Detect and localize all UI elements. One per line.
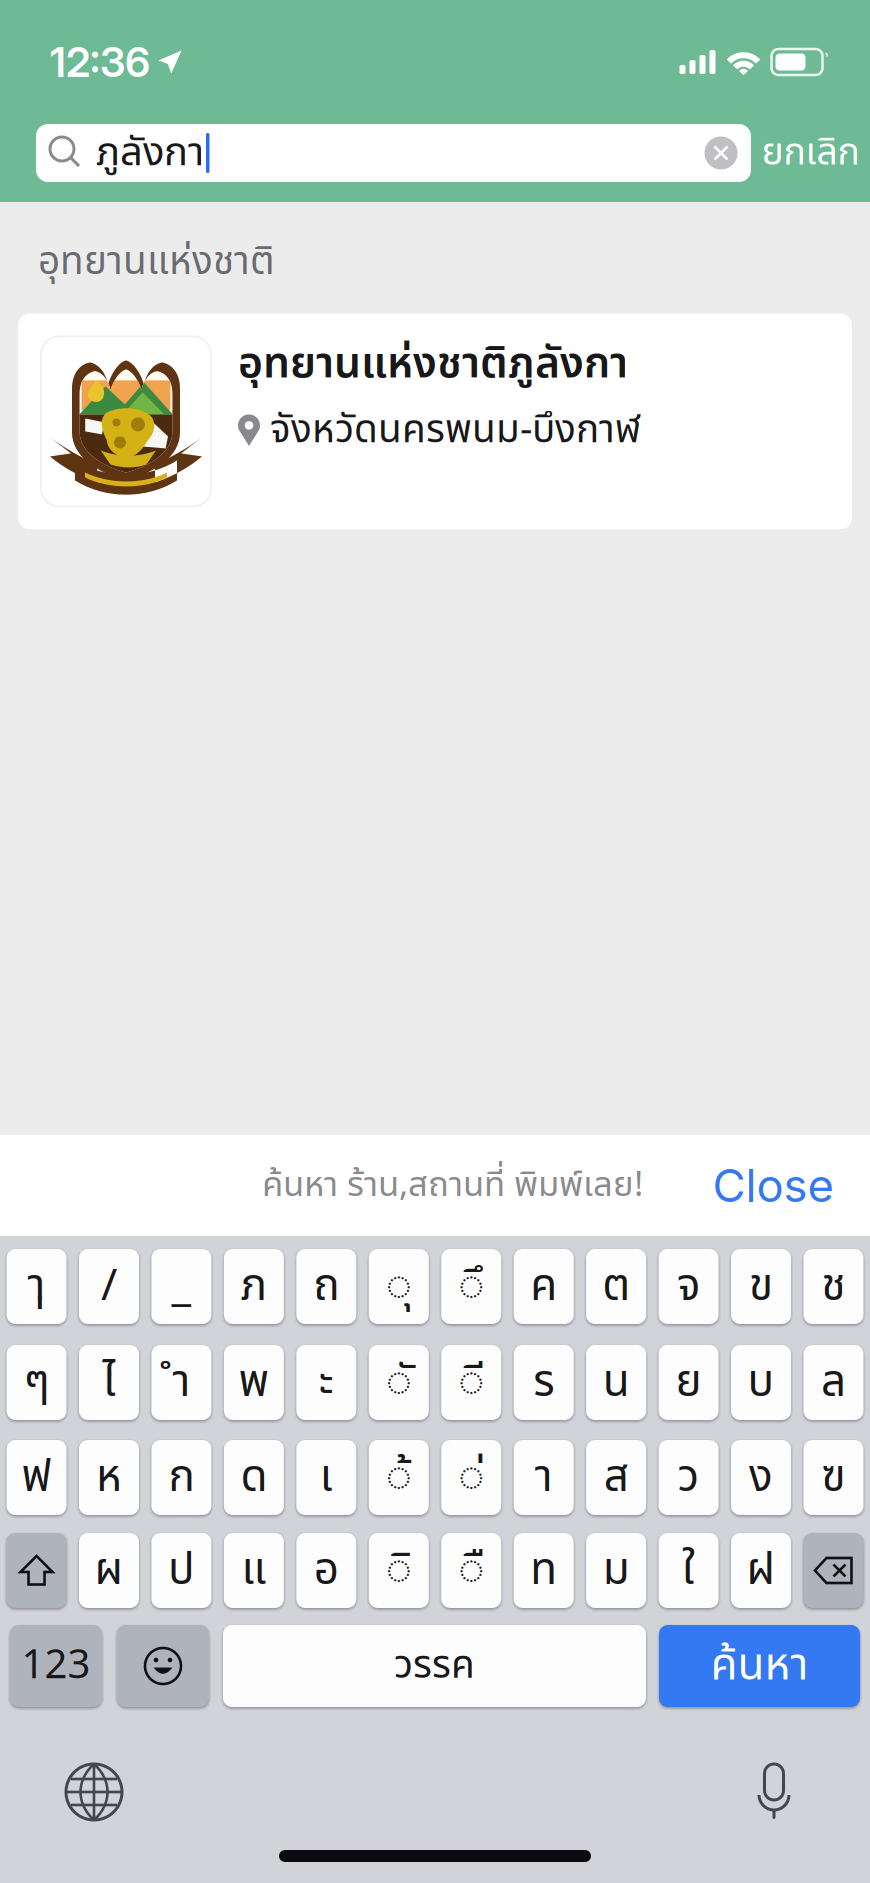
staticText: ึ xyxy=(458,1253,484,1320)
button[interactable]: ื xyxy=(441,1533,501,1608)
staticText: แ xyxy=(241,1537,266,1604)
staticText: ภูลังกา xyxy=(96,123,204,183)
button[interactable]: ง xyxy=(731,1440,791,1515)
staticText: ภ xyxy=(240,1253,267,1320)
button[interactable]: ึ xyxy=(441,1249,501,1324)
button[interactable]: Dictation xyxy=(755,1763,793,1821)
staticText: วรรค xyxy=(394,1637,475,1695)
staticText: 12:36 xyxy=(50,37,150,87)
staticText: ค xyxy=(530,1253,557,1320)
staticText: จ xyxy=(677,1253,700,1320)
button[interactable]: ท xyxy=(514,1533,574,1608)
button[interactable]: อ xyxy=(296,1533,356,1608)
staticText: ต xyxy=(602,1253,630,1320)
staticText: ว xyxy=(678,1444,700,1511)
button[interactable]: ป xyxy=(151,1533,211,1608)
button[interactable]: น xyxy=(586,1345,646,1420)
button[interactable]: ภ xyxy=(224,1249,284,1324)
staticText: ่ xyxy=(458,1444,484,1511)
button[interactable]: บ xyxy=(731,1345,791,1420)
staticText: ฝ xyxy=(746,1537,775,1604)
button[interactable]: ำ xyxy=(151,1345,211,1420)
staticText: / xyxy=(101,1253,117,1320)
staticText: ื xyxy=(458,1537,484,1604)
button[interactable]: ิ xyxy=(369,1533,429,1608)
button[interactable]: ผ xyxy=(79,1533,139,1608)
button[interactable]: ุ xyxy=(369,1249,429,1324)
button[interactable]: ส xyxy=(586,1440,646,1515)
button[interactable]: Shift xyxy=(6,1533,66,1608)
button[interactable]: ้ xyxy=(369,1440,429,1515)
staticText: ใ xyxy=(682,1537,695,1604)
staticText: ะ xyxy=(319,1349,334,1416)
button[interactable]: พ xyxy=(224,1345,284,1420)
staticText: ข xyxy=(749,1253,773,1320)
button[interactable]: ค้นหา xyxy=(659,1625,860,1707)
button[interactable]: / xyxy=(79,1249,139,1324)
staticText: เ xyxy=(320,1444,333,1511)
button[interactable]: Change keyboard xyxy=(63,1762,125,1822)
staticText: อุทยานแห่งชาติภูลังกา xyxy=(238,332,628,396)
button[interactable]: ั xyxy=(369,1345,429,1420)
button[interactable]: ่ xyxy=(441,1440,501,1515)
button[interactable]: ม xyxy=(586,1533,646,1608)
staticText: _ xyxy=(171,1253,191,1320)
button[interactable]: Emoji xyxy=(117,1625,209,1707)
button[interactable]: ห xyxy=(79,1440,139,1515)
button[interactable]: แ xyxy=(224,1533,284,1608)
button[interactable]: วรรค xyxy=(223,1625,646,1707)
button[interactable]: ฟ xyxy=(6,1440,66,1515)
button[interactable]: เ xyxy=(296,1440,356,1515)
button[interactable]: ะ xyxy=(296,1345,356,1420)
button[interactable]: ค xyxy=(514,1249,574,1324)
staticText: ท xyxy=(530,1537,557,1604)
button[interactable]: ๆ xyxy=(6,1345,66,1420)
button[interactable]: ด xyxy=(224,1440,284,1515)
button[interactable]: จ xyxy=(659,1249,719,1324)
staticText: ำ xyxy=(172,1349,190,1416)
button[interactable]: ก xyxy=(151,1440,211,1515)
staticText: ย xyxy=(676,1349,702,1416)
button[interactable]: ฃ xyxy=(803,1440,863,1515)
button[interactable]: ถ xyxy=(296,1249,356,1324)
staticText: ช xyxy=(821,1253,845,1320)
staticText: Close xyxy=(712,1158,833,1213)
staticText: ห xyxy=(96,1444,122,1511)
button[interactable]: ช xyxy=(803,1249,863,1324)
staticText: ุ xyxy=(386,1253,412,1320)
staticText: ง xyxy=(749,1444,773,1511)
button[interactable]: ว xyxy=(659,1440,719,1515)
staticText: น xyxy=(603,1349,630,1416)
button[interactable]: า xyxy=(514,1440,574,1515)
button[interactable]: ยกเลิก xyxy=(751,124,870,182)
staticText: ด xyxy=(240,1444,267,1511)
staticText: ั xyxy=(386,1349,412,1416)
button[interactable]: ข xyxy=(731,1249,791,1324)
staticText: ๅ xyxy=(27,1253,45,1320)
button[interactable]: _ xyxy=(151,1249,211,1324)
staticText: ร xyxy=(533,1349,554,1416)
staticText: ไ xyxy=(102,1349,115,1416)
staticText: บ xyxy=(747,1349,774,1416)
button[interactable]: ฝ xyxy=(731,1533,791,1608)
button[interactable]: ไ xyxy=(79,1345,139,1420)
staticText: อุทยานแห่งชาติ xyxy=(38,233,275,291)
button[interactable]: ล xyxy=(803,1345,863,1420)
button[interactable]: ใ xyxy=(659,1533,719,1608)
button[interactable]: ร xyxy=(514,1345,574,1420)
button[interactable]: ย xyxy=(659,1345,719,1420)
staticText: ป xyxy=(168,1537,195,1604)
staticText: ก xyxy=(168,1444,194,1511)
staticText: ยกเลิก xyxy=(761,125,859,181)
staticText: ส xyxy=(604,1444,629,1511)
staticText: ฟ xyxy=(21,1444,51,1511)
button[interactable]: ๅ xyxy=(6,1249,66,1324)
staticText: ล xyxy=(821,1349,846,1416)
staticText: ้ xyxy=(386,1444,412,1511)
button[interactable]: 123 xyxy=(10,1625,102,1707)
button[interactable]: Close xyxy=(707,1155,839,1215)
button[interactable]: ี xyxy=(441,1345,501,1420)
button[interactable]: ต xyxy=(586,1249,646,1324)
button[interactable]: Delete xyxy=(803,1533,863,1608)
button[interactable]: อุทยานแห่งชาติภูลังกา xyxy=(18,313,852,529)
